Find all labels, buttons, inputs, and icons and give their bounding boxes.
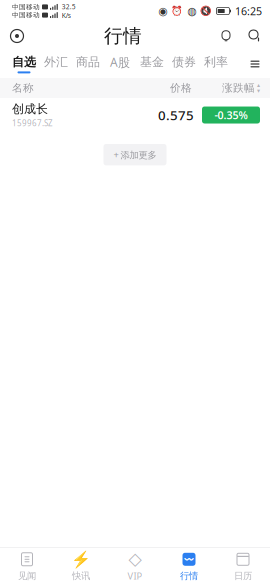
staticText: ▲ <box>257 83 260 87</box>
staticText: VIP <box>127 570 142 582</box>
staticText: -0.35% <box>214 108 247 122</box>
staticText: 创成长 <box>12 102 48 116</box>
staticText: 32.5 <box>62 2 76 11</box>
button[interactable]: 债券 <box>168 50 200 78</box>
button[interactable]: A股 <box>104 50 136 78</box>
button[interactable]: Search <box>240 22 270 50</box>
staticText: 🔇 <box>200 6 212 16</box>
button[interactable]: ⚡ <box>54 548 108 585</box>
staticText: 价格 <box>170 81 192 94</box>
button[interactable]: Notifications <box>212 22 240 50</box>
staticText: 涨跌幅 <box>222 81 255 94</box>
staticText: ◍ <box>187 5 196 17</box>
staticText: ⚡ <box>71 550 91 568</box>
staticText: + 添加更多 <box>113 148 156 161</box>
staticText: 债券 <box>172 55 196 69</box>
button[interactable]: 基金 <box>136 50 168 78</box>
staticText: ▼ <box>257 88 260 93</box>
button[interactable]: + 添加更多 <box>103 144 166 165</box>
staticText: 见闻 <box>18 570 36 582</box>
staticText: K/s <box>62 11 71 20</box>
staticText: 外汇 <box>44 55 68 69</box>
staticText: 利率 <box>204 55 228 69</box>
staticText: ◇ <box>128 549 141 569</box>
button[interactable]: 见闻 <box>0 548 54 585</box>
staticText: 日历 <box>234 570 252 582</box>
button[interactable]: ◇ <box>108 548 162 585</box>
button[interactable]: 创成长 <box>0 98 270 132</box>
staticText: 159967.SZ <box>12 118 53 128</box>
staticText: 名称 <box>12 81 34 94</box>
button[interactable]: Settings <box>0 22 34 50</box>
staticText: A股 <box>110 54 130 70</box>
button[interactable]: More categories <box>240 50 270 78</box>
staticText: 0.575 <box>158 106 194 124</box>
button[interactable]: 利率 <box>200 50 232 78</box>
button[interactable]: 日历 <box>216 548 270 585</box>
staticText: 快讯 <box>72 570 90 582</box>
staticText: 行情 <box>104 24 142 47</box>
staticText: 自选 <box>12 55 36 69</box>
staticText: 〰 <box>183 554 195 565</box>
staticText: 中国移动 <box>12 11 40 19</box>
button[interactable]: 外汇 <box>40 50 72 78</box>
button[interactable]: 自选 <box>8 50 40 78</box>
staticText: ◉ <box>158 5 167 17</box>
staticText: 行情 <box>180 570 198 582</box>
button[interactable]: 商品 <box>72 50 104 78</box>
staticText: 中国移动 <box>12 3 40 11</box>
staticText: 16:25 <box>235 4 262 18</box>
staticText: 商品 <box>76 55 100 69</box>
button[interactable]: 〰 <box>162 548 216 585</box>
staticText: ⏰ <box>171 6 183 16</box>
staticText: 基金 <box>140 55 164 69</box>
